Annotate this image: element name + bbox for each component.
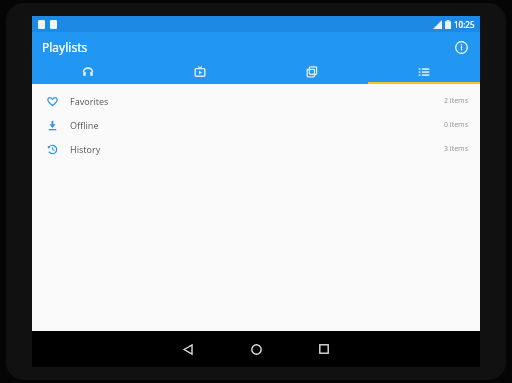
- button[interactable]: Playlists list: [368, 62, 480, 84]
- button[interactable]: Home: [233, 331, 279, 367]
- staticText: 0 items: [443, 120, 468, 130]
- staticText: 10:25: [454, 19, 475, 30]
- staticText: History: [70, 143, 101, 155]
- button[interactable]: Recent apps: [301, 331, 347, 367]
- button[interactable]: Offline: [32, 113, 480, 137]
- button[interactable]: Back: [165, 331, 211, 367]
- button[interactable]: Favorites: [32, 89, 480, 113]
- staticText: 3 items: [443, 144, 468, 154]
- button[interactable]: Video playlists: [144, 62, 256, 84]
- staticText: Offline: [70, 119, 99, 131]
- button[interactable]: History: [32, 137, 480, 161]
- button[interactable]: Saved collections: [256, 62, 368, 84]
- button[interactable]: Information: [448, 34, 474, 60]
- staticText: 2 items: [443, 96, 468, 106]
- staticText: Playlists: [42, 39, 88, 55]
- button[interactable]: Music playlists: [32, 62, 144, 84]
- staticText: Favorites: [70, 95, 109, 107]
